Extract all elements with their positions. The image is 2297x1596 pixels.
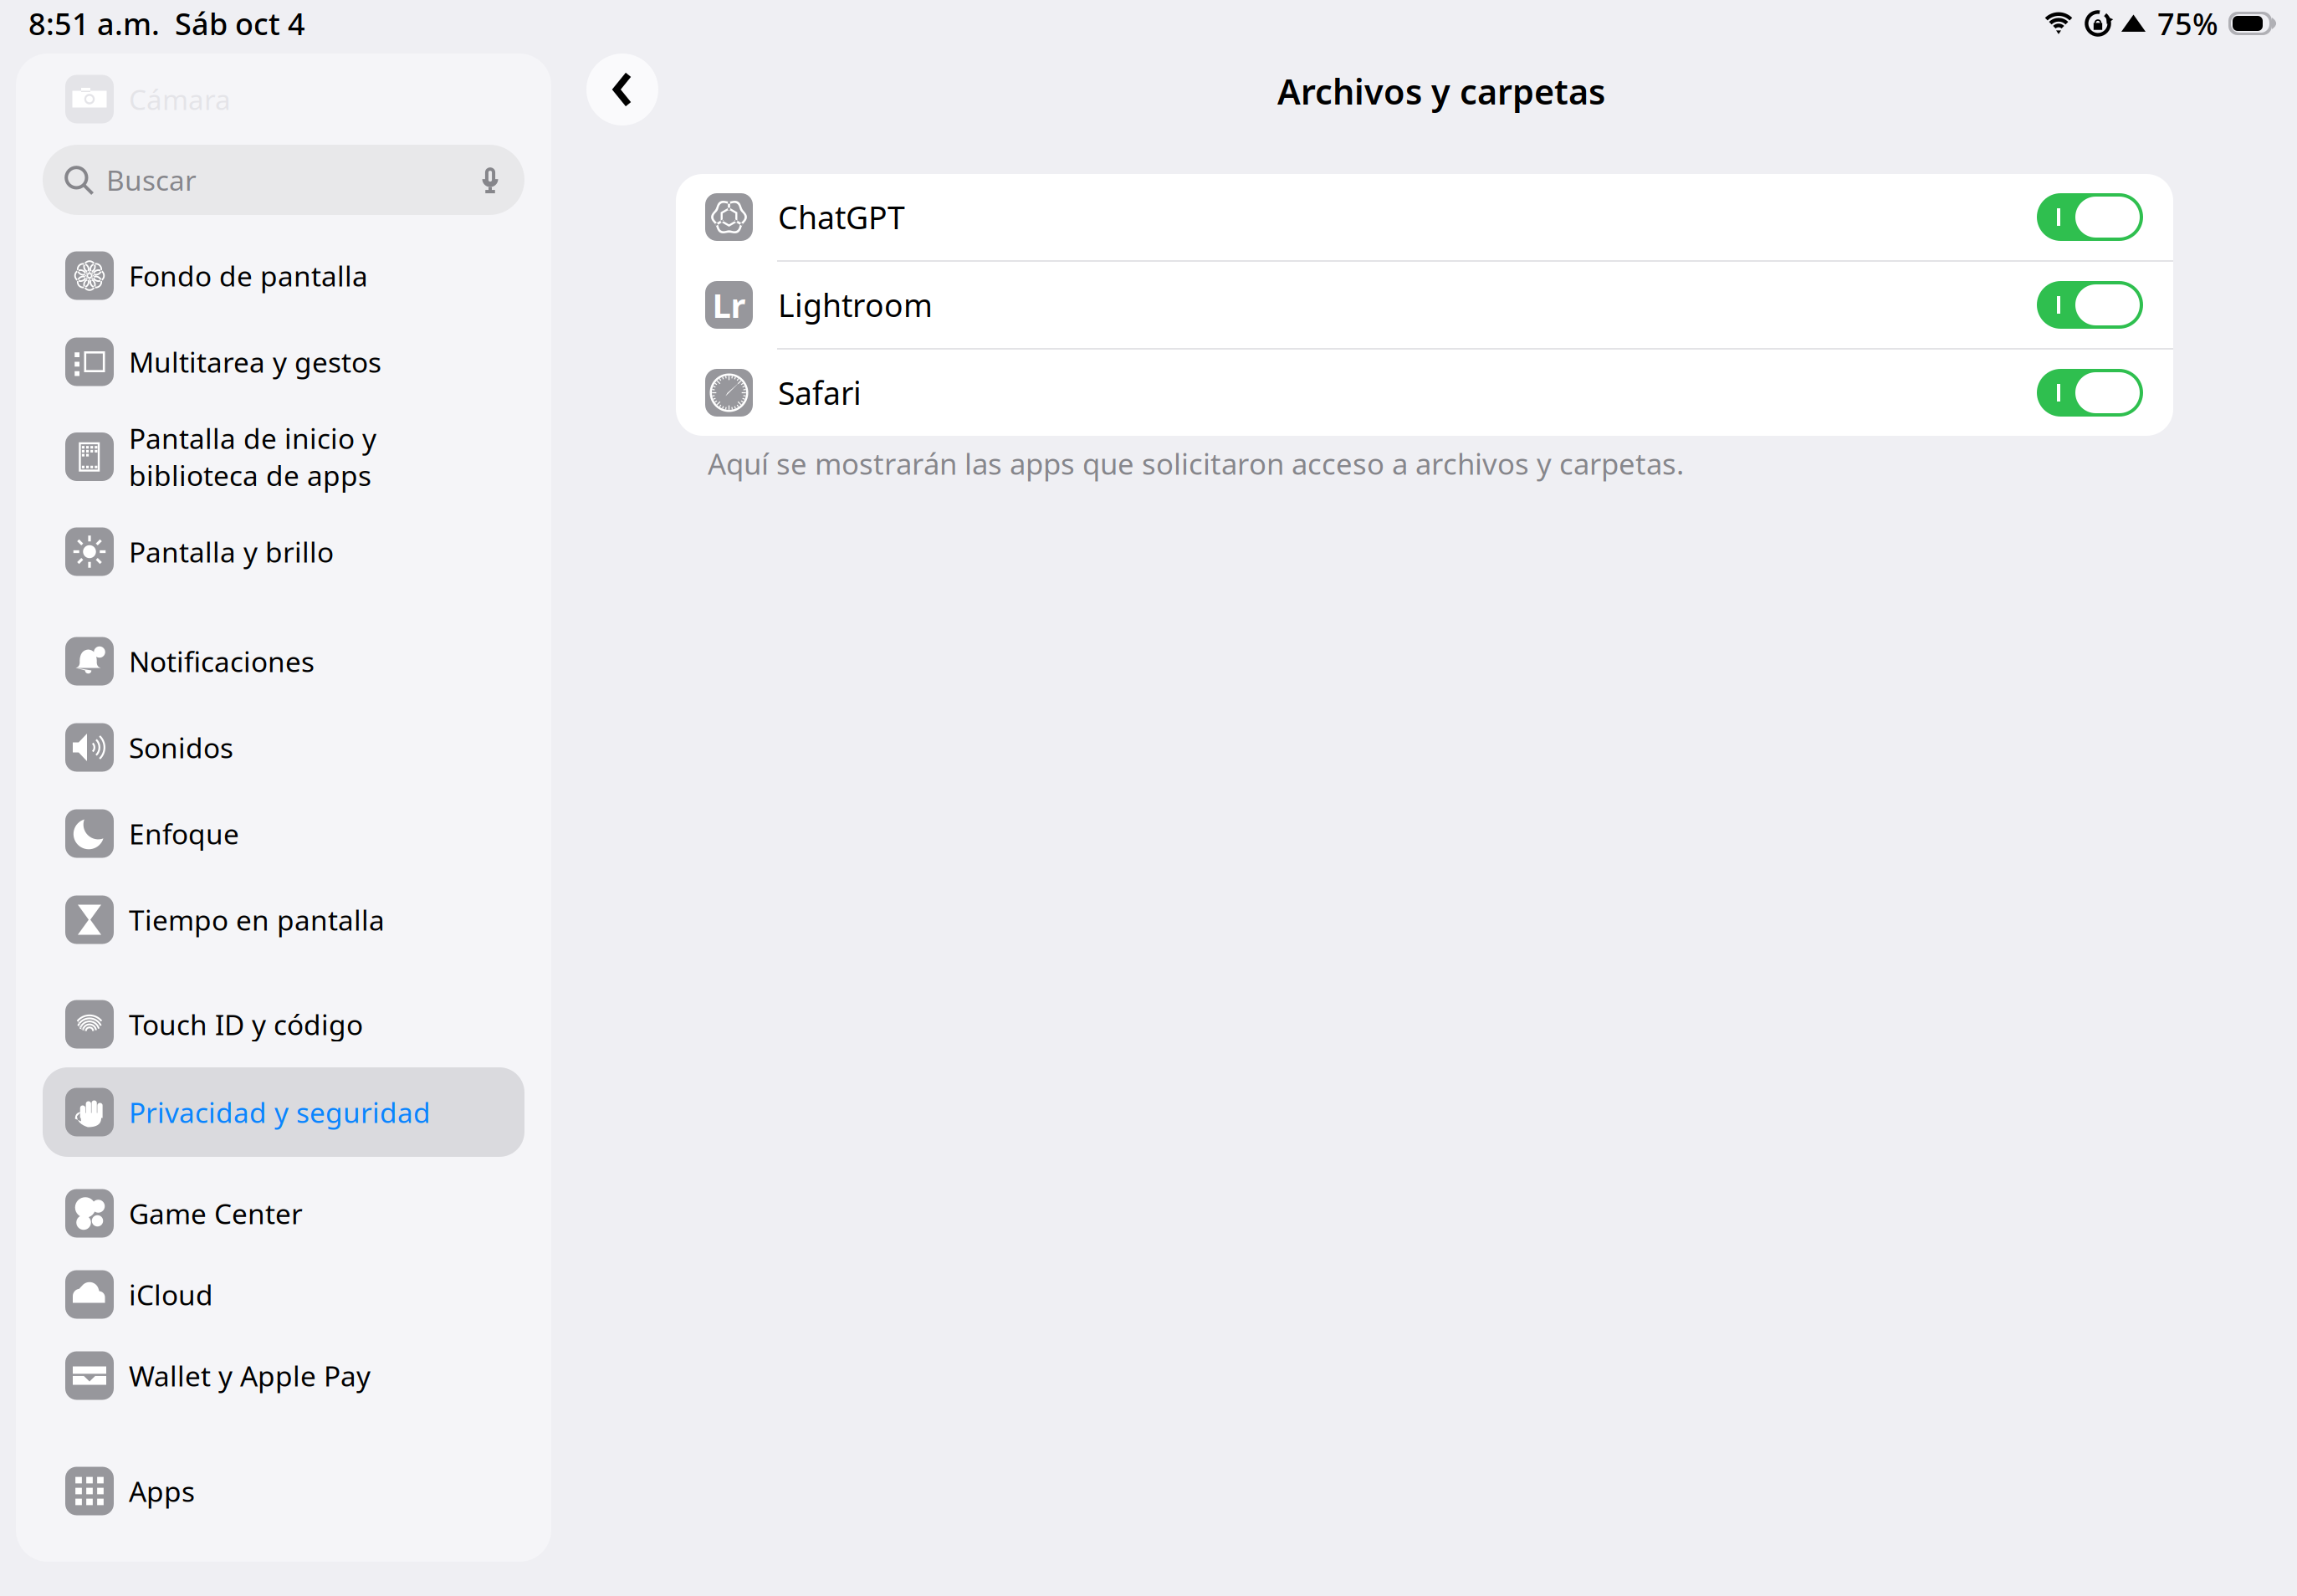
staticText: Enfoque [129, 815, 239, 852]
staticText: Lightroom [778, 284, 933, 326]
staticText: Wallet y Apple Pay [129, 1357, 371, 1394]
staticText: Safari [778, 372, 862, 413]
button[interactable]: Atrás [586, 54, 658, 125]
button[interactable]: Pantalla de inicio y biblioteca de apps [43, 405, 524, 509]
button[interactable]: Tiempo en pantalla [43, 877, 524, 963]
button[interactable]: Privacidad y seguridad [43, 1067, 524, 1157]
staticText: Aquí se mostrarán las apps que solicitar… [708, 444, 1684, 483]
staticText: Tiempo en pantalla [129, 901, 385, 938]
staticText: Multitarea y gestos [129, 343, 381, 380]
staticText: Fondo de pantalla [129, 257, 368, 294]
staticText: iCloud [129, 1276, 213, 1313]
staticText: Sáb oct 4 [175, 3, 305, 43]
staticText: Pantalla y brillo [129, 533, 334, 570]
staticText: Privacidad y seguridad [129, 1094, 431, 1131]
staticText: Buscar [106, 161, 197, 198]
staticText: Apps [129, 1473, 195, 1510]
button[interactable]: Multitarea y gestos [43, 319, 524, 405]
button[interactable]: Notificaciones [43, 618, 524, 704]
staticText: Cámara [129, 81, 231, 118]
staticText: Pantalla de inicio y biblioteca de apps [129, 420, 376, 494]
staticText: Sonidos [129, 729, 233, 766]
button[interactable]: Game Center [43, 1173, 524, 1254]
button[interactable]: Enfoque [43, 790, 524, 877]
button[interactable]: Sonidos [43, 704, 524, 790]
button[interactable]: Pantalla y brillo [43, 509, 524, 595]
button[interactable]: Fondo de pantalla [43, 233, 524, 319]
staticText: Notificaciones [129, 643, 315, 680]
button[interactable]: Safari [676, 350, 2173, 436]
staticText: 8:51 a.m. [28, 3, 160, 43]
button[interactable]: Lr [676, 262, 2173, 348]
button[interactable]: Wallet y Apple Pay [43, 1335, 524, 1416]
button[interactable]: iCloud [43, 1254, 524, 1335]
staticText: Touch ID y código [129, 1006, 363, 1043]
staticText: ChatGPT [778, 196, 905, 238]
button[interactable]: ChatGPT [676, 174, 2173, 260]
staticText: Game Center [129, 1195, 303, 1232]
button[interactable]: Apps [43, 1448, 524, 1534]
staticText: Archivos y carpetas [1277, 68, 1605, 114]
staticText: Lr [712, 283, 746, 327]
button[interactable]: Touch ID y código [43, 981, 524, 1067]
staticText: 75% [2157, 3, 2218, 43]
